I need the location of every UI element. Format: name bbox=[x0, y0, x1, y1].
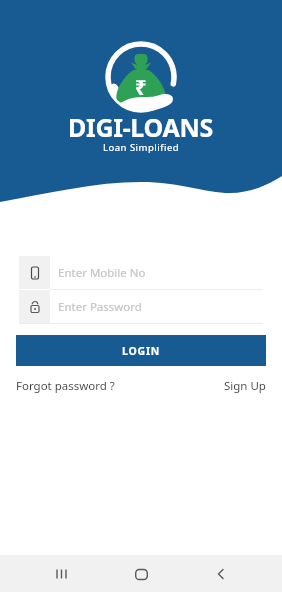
button[interactable] bbox=[44, 556, 80, 592]
staticText: Enter Password bbox=[58, 299, 142, 315]
button[interactable] bbox=[203, 556, 239, 592]
button[interactable]: Enter Mobile No bbox=[19, 256, 263, 289]
staticText: ₹ bbox=[135, 74, 147, 101]
button[interactable]: Forgot password ? bbox=[16, 378, 115, 394]
staticText: Loan Simplified bbox=[103, 141, 180, 154]
button[interactable]: Sign Up bbox=[224, 378, 266, 394]
button[interactable]: Enter Password bbox=[19, 290, 263, 323]
staticText: DIGI-LOANS bbox=[68, 110, 214, 144]
button[interactable] bbox=[123, 556, 159, 592]
staticText: Enter Mobile No bbox=[58, 265, 146, 281]
staticText: LOGIN bbox=[122, 344, 161, 358]
button[interactable]: LOGIN bbox=[16, 335, 266, 366]
